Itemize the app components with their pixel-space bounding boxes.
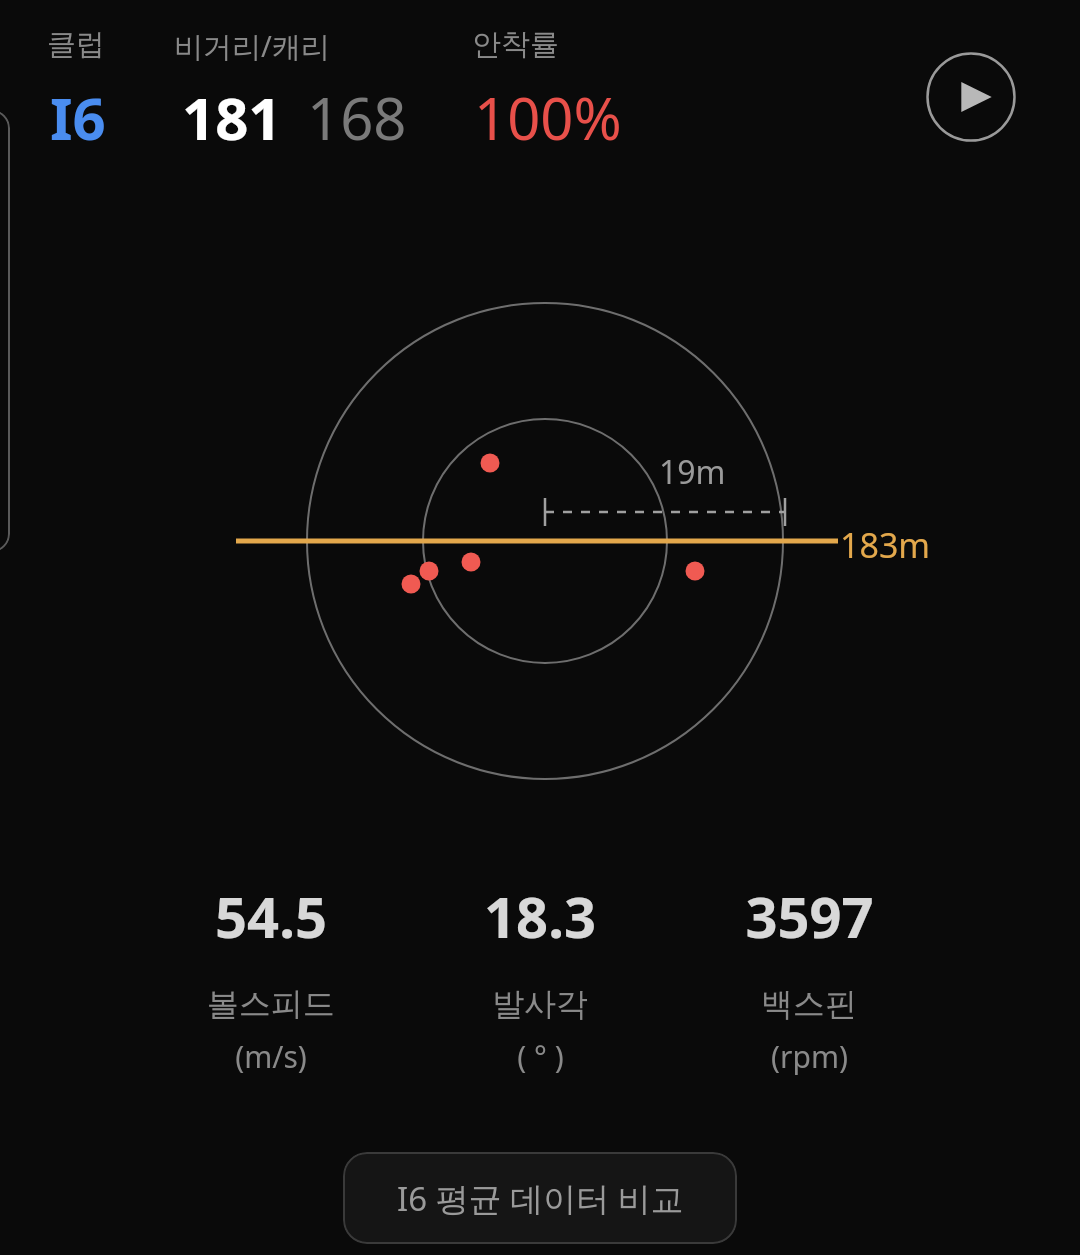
staticText: 백스핀 [761,984,857,1024]
staticText: 안착률 [472,26,559,63]
staticText: 19m [659,450,726,494]
button[interactable]: I6 평균 데이터 비교 [343,1152,737,1244]
staticText: 181 [182,78,282,157]
staticText: 볼스피드 [207,984,335,1024]
staticText: 100% [474,78,622,157]
staticText: I6 평균 데이터 비교 [397,1176,684,1221]
staticText: 3597 [745,878,874,954]
staticText: ( ° ) [517,1036,564,1077]
button[interactable]: Play [926,52,1016,142]
staticText: 18.3 [484,878,596,954]
button[interactable] [0,110,10,552]
staticText: 클럽 [47,26,105,63]
staticText: 183m [840,522,931,568]
staticText: I6 [50,78,106,157]
staticText: (m/s) [235,1036,307,1077]
staticText: 54.5 [215,878,327,954]
staticText: (rpm) [771,1036,848,1077]
staticText: 비거리/캐리 [174,26,330,66]
staticText: 168 [307,78,407,157]
staticText: 발사각 [492,984,588,1024]
